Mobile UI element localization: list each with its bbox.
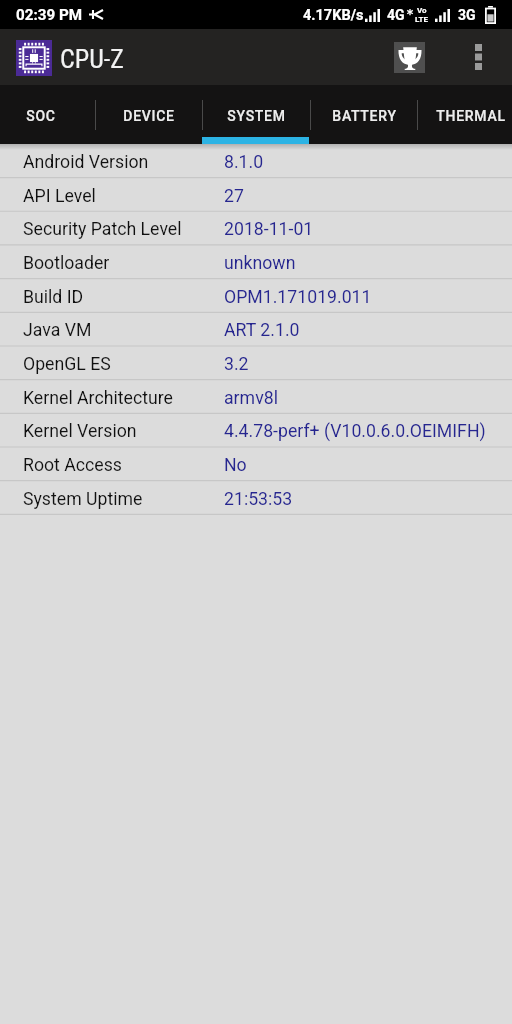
button[interactable]: Kernel Version [0,413,512,447]
button[interactable]: System Uptime [0,481,512,515]
staticText: 3.2 [224,354,249,375]
button[interactable]: CPU-Z [16,40,52,76]
button[interactable]: SYSTEM [202,85,310,144]
staticText: 2018-11-01 [224,219,314,240]
staticText: Java VM [23,320,224,341]
staticText: Vo [417,6,427,15]
staticText: BATTERY [332,108,397,124]
staticText: 27 [224,186,244,207]
staticText: CPU-Z [60,44,124,74]
staticText: Kernel Architecture [23,388,224,409]
button[interactable]: DEVICE [95,85,203,144]
staticText: ART 2.1.0 [224,320,300,341]
button[interactable]: More options [454,29,502,85]
staticText: unknown [224,253,296,274]
button[interactable]: Security Patch Level [0,211,512,245]
button[interactable]: OpenGL ES [0,346,512,380]
staticText: 3G [458,7,476,23]
button[interactable]: Root Access [0,447,512,481]
button[interactable]: BATTERY [310,85,418,144]
staticText: Bootloader [23,253,224,274]
staticText: No [224,455,247,476]
button[interactable]: Benchmark [394,42,425,73]
staticText: 02:39 PM [16,6,82,24]
staticText: Build ID [23,287,224,308]
staticText: LTE [415,15,428,24]
staticText: Root Access [23,455,224,476]
staticText: THERMAL [436,108,506,124]
staticText: API Level [23,186,224,207]
staticText: armv8l [224,388,278,409]
staticText: OPM1.171019.011 [224,287,372,308]
staticText: 21:53:53 [224,489,293,510]
button[interactable]: SOC [0,85,95,144]
staticText: OpenGL ES [23,354,224,375]
button[interactable]: Kernel Architecture [0,380,512,414]
staticText: DEVICE [123,108,175,124]
button[interactable]: Build ID [0,279,512,313]
staticText: Security Patch Level [23,219,224,240]
button[interactable]: API Level [0,178,512,212]
staticText: Kernel Version [23,421,224,442]
staticText: System Uptime [23,489,224,510]
staticText: SOC [26,108,56,124]
staticText: 8.1.0 [224,152,264,173]
button[interactable]: THERMAL [417,85,512,144]
staticText: 4G [387,7,405,23]
staticText: Android Version [23,152,224,173]
button[interactable]: Bootloader [0,245,512,279]
button[interactable]: Android Version [0,144,512,178]
button[interactable]: Java VM [0,312,512,346]
staticText: SYSTEM [227,108,286,124]
staticText: 4.17KB/s [303,7,364,24]
staticText: 4.4.78-perf+ (V10.0.6.0.OEIMIFH) [224,421,486,442]
